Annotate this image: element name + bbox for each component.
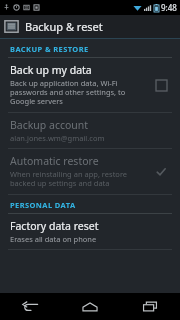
button[interactable]: Back: [0, 293, 60, 320]
staticText: Backup account: [10, 118, 89, 132]
staticText: When reinstalling an app, restore backed…: [10, 169, 128, 189]
button[interactable]: Back up my data checkbox: [154, 78, 168, 92]
staticText: 9:48: [161, 2, 177, 13]
staticText: Back up my data: [10, 63, 92, 77]
staticText: Back up application data, Wi-Fi password…: [10, 78, 126, 107]
button[interactable]: Back up my data: [0, 58, 180, 112]
button[interactable]: Home: [60, 293, 120, 320]
button[interactable]: Backup account: [0, 113, 180, 148]
button[interactable]: Automatic restore: [0, 149, 180, 194]
staticText: alan.jones.wm@gmail.com: [10, 133, 105, 143]
staticText: Backup & reset: [25, 19, 103, 34]
staticText: PERSONAL DATA: [10, 200, 76, 210]
button[interactable]: Recent apps: [120, 293, 180, 320]
other: Settings: [4, 19, 19, 34]
staticText: Automatic restore: [10, 154, 99, 168]
button[interactable]: Factory data reset: [0, 214, 180, 249]
staticText: Erases all data on phone: [10, 234, 97, 244]
staticText: BACKUP & RESTORE: [10, 44, 89, 54]
staticText: Factory data reset: [10, 219, 99, 233]
button[interactable]: Settings: [0, 15, 180, 38]
